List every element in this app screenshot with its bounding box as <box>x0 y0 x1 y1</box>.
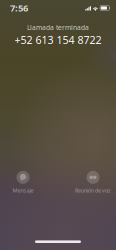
staticText: +52 613 154 8722 <box>14 33 101 47</box>
staticText: Reunión de voz <box>75 187 111 194</box>
staticText: Llamada terminada <box>27 23 89 32</box>
staticText: 7:56 <box>10 2 28 14</box>
button[interactable]: Mensaje <box>0 170 46 194</box>
button[interactable]: Reunión de voz <box>70 170 116 194</box>
staticText: Mensaje <box>12 187 33 194</box>
